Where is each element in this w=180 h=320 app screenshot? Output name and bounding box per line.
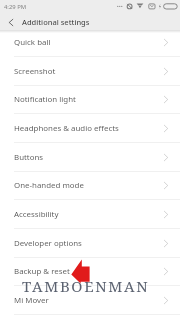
staticText: 4:29 PM: [4, 3, 27, 11]
button[interactable]: Accessibility: [0, 200, 180, 229]
button[interactable]: Headphones & audio effects: [0, 114, 180, 143]
button[interactable]: One-handed mode: [0, 171, 180, 200]
staticText: Additional settings: [22, 17, 90, 27]
button[interactable]: Quick ball: [0, 28, 180, 57]
staticText: TAMBOENMAN: [22, 276, 150, 296]
staticText: Notification light: [14, 94, 76, 105]
staticText: Quick ball: [14, 37, 51, 48]
button[interactable]: Buttons: [0, 143, 180, 172]
button[interactable]: Backup & reset: [0, 257, 180, 286]
staticText: Headphones & audio effects: [14, 123, 119, 134]
staticText: Backup & reset: [14, 266, 70, 277]
staticText: One-handed mode: [14, 180, 84, 191]
button[interactable]: Notification light: [0, 85, 180, 114]
button[interactable]: Mi Mover: [0, 286, 180, 315]
staticText: Accessibility: [14, 209, 59, 220]
button[interactable]: Back: [3, 15, 18, 30]
staticText: Screenshot: [14, 66, 56, 77]
staticText: Buttons: [14, 152, 44, 163]
staticText: Mi Mover: [14, 295, 49, 306]
staticText: Developer options: [14, 238, 82, 249]
button[interactable]: Developer options: [0, 229, 180, 258]
button[interactable]: Screenshot: [0, 57, 180, 86]
